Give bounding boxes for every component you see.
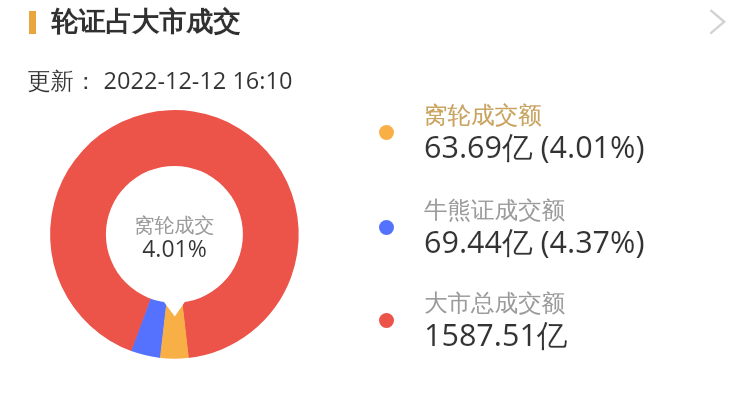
staticText: 63.69亿 (4.01%) [424,125,645,167]
button[interactable]: Warrant share of market turnover chart [48,108,301,361]
button[interactable]: 大市总成交额 [373,284,673,356]
button[interactable]: Open details [695,0,741,44]
button[interactable]: 窝轮成交额 [373,96,673,168]
staticText: 轮证占大市成交 [51,5,240,39]
button[interactable]: 轮证占大市成交 [0,0,690,44]
staticText: 牛熊证成交额 [424,195,565,225]
staticText: 窝轮成交额 [424,100,542,130]
staticText: 4.01% [96,232,253,263]
staticText: 更新： 2022-12-12 16:10 [27,64,293,96]
staticText: 69.44亿 (4.37%) [424,220,645,262]
button[interactable]: 牛熊证成交额 [373,191,673,263]
staticText: 大市总成交额 [424,288,565,318]
staticText: 1587.51亿 [424,313,568,355]
staticText: 窝轮成交 [96,213,253,238]
